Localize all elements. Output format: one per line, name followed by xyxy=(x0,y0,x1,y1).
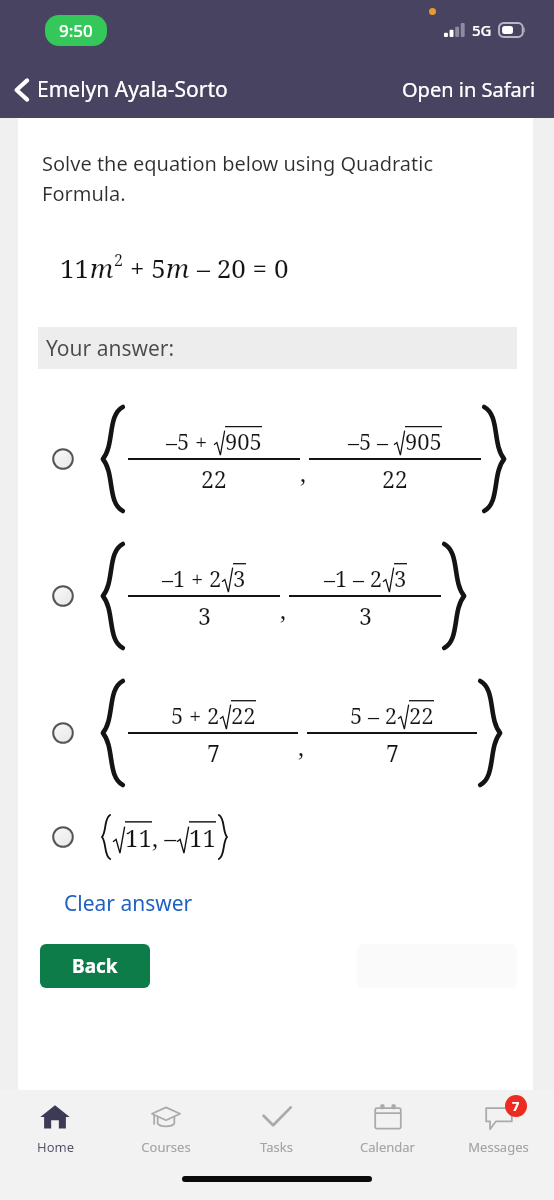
staticText: , – xyxy=(152,821,177,854)
staticText: 11 xyxy=(189,821,216,854)
staticText: 22 xyxy=(409,700,434,730)
staticText: Emelyn Ayala-Sorto xyxy=(37,75,228,104)
staticText: –1 + 2 xyxy=(162,563,222,593)
staticText: 3 xyxy=(394,563,407,593)
staticText: 2 xyxy=(114,249,123,271)
button[interactable]: Back xyxy=(40,944,150,988)
staticText: 5 + 2 xyxy=(171,700,220,730)
staticText: , xyxy=(298,730,304,763)
staticText: , xyxy=(280,593,286,626)
button[interactable]: Open in Safari xyxy=(384,68,554,111)
staticText: Solve the equation below using Quadratic… xyxy=(42,150,434,207)
staticText: 22 xyxy=(382,463,408,494)
button[interactable]: Courses xyxy=(110,1090,221,1166)
button[interactable]: Tasks xyxy=(221,1090,332,1166)
staticText: 9:50 xyxy=(59,19,93,42)
staticText: 7 xyxy=(512,1097,520,1115)
staticText: Back xyxy=(72,953,118,979)
button[interactable]: Home xyxy=(0,1090,110,1166)
staticText: – 20 = 0 xyxy=(197,250,289,285)
staticText: –1 – 2 xyxy=(324,563,383,593)
button[interactable]: 11 xyxy=(18,815,533,859)
button[interactable]: 7 xyxy=(443,1090,554,1166)
button[interactable]: Calendar xyxy=(332,1090,443,1166)
staticText: 11 xyxy=(125,821,152,854)
staticText: + 5 xyxy=(130,250,166,285)
staticText: 905 xyxy=(405,426,442,456)
staticText: Open in Safari xyxy=(402,76,536,103)
staticText: 5G xyxy=(472,20,492,40)
staticText: 22 xyxy=(201,463,227,494)
button[interactable]: –1 + 2 xyxy=(18,544,533,648)
button[interactable]: 5 + 2 xyxy=(18,681,533,785)
staticText: 3 xyxy=(198,600,211,631)
staticText: Courses xyxy=(141,1138,191,1156)
staticText: Clear answer xyxy=(64,889,193,918)
staticText: 11 xyxy=(60,250,90,285)
button[interactable]: Clear answer xyxy=(18,887,203,922)
staticText: 3 xyxy=(233,563,246,593)
button[interactable]: –5 + xyxy=(18,407,533,511)
staticText: Messages xyxy=(468,1138,529,1156)
staticText: Your answer: xyxy=(46,334,175,363)
staticText: 905 xyxy=(225,426,262,456)
staticText: 22 xyxy=(231,700,256,730)
staticText: 7 xyxy=(386,737,399,768)
staticText: Home xyxy=(37,1138,74,1156)
staticText: 7 xyxy=(207,737,220,768)
staticText: Calendar xyxy=(360,1138,415,1156)
button[interactable]: Emelyn Ayala-Sorto xyxy=(0,69,236,110)
staticText: Tasks xyxy=(260,1138,293,1156)
staticText: –5 + xyxy=(166,426,214,456)
staticText: 5 – 2 xyxy=(350,700,398,730)
staticText: 3 xyxy=(359,600,372,631)
staticText: m xyxy=(90,250,114,285)
staticText: , xyxy=(300,456,306,489)
staticText: m xyxy=(166,250,190,285)
staticText: –5 – xyxy=(348,426,394,456)
